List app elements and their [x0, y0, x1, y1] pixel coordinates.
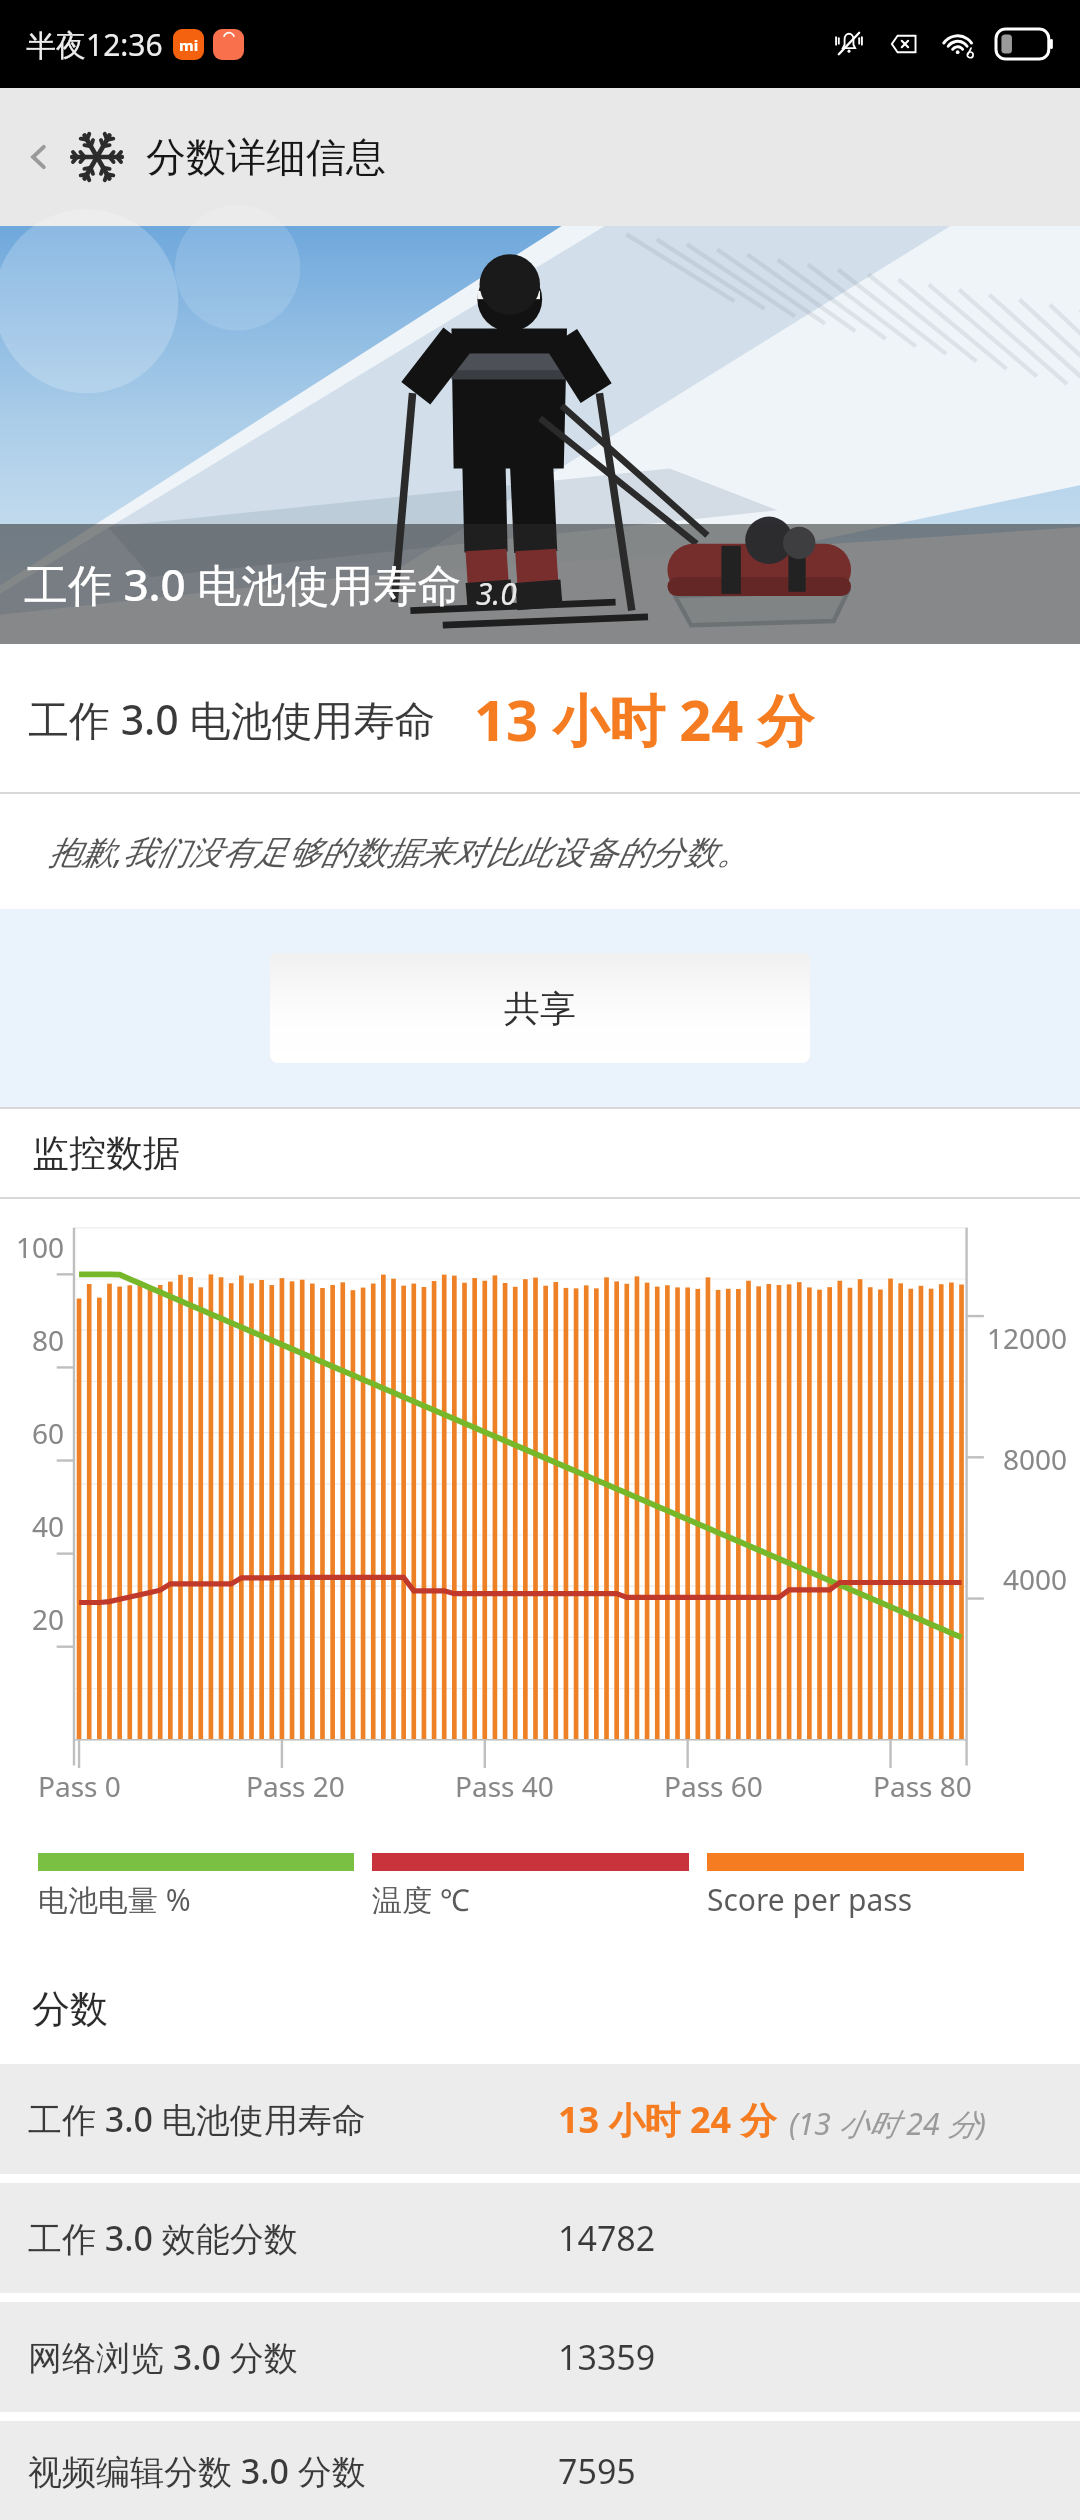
staticText: 20	[8, 1600, 64, 1638]
staticText: 工作 3.0 电池使用寿命	[28, 2096, 366, 2142]
staticText: 3.0	[476, 573, 517, 614]
button[interactable]: Back	[8, 126, 70, 188]
staticText: Score per pass	[707, 1879, 913, 1920]
staticText: mi	[179, 35, 199, 55]
staticText: 4000	[1003, 1560, 1068, 1598]
staticText: Pass 80	[873, 1767, 972, 1805]
staticText: 分数详细信息	[146, 132, 386, 182]
staticText: 7595	[558, 2448, 636, 2494]
button[interactable]: 共享	[270, 953, 810, 1063]
staticText: Pass 0	[38, 1767, 121, 1805]
staticText: 13 小时 24 分	[474, 681, 814, 757]
staticText: 60	[8, 1414, 64, 1452]
staticText: 网络浏览 3.0 分数	[28, 2334, 298, 2380]
staticText: 温度 ℃	[372, 1879, 470, 1920]
staticText: 工作 3.0 效能分数	[28, 2215, 298, 2261]
staticText: 工作 3.0 电池使用寿命	[24, 554, 462, 614]
staticText: 40	[8, 1507, 64, 1545]
staticText: 13 小时 24 分	[558, 2095, 777, 2144]
staticText: 8000	[1003, 1440, 1068, 1478]
staticText: Pass 60	[664, 1767, 763, 1805]
staticText: 监控数据	[32, 1130, 180, 1177]
staticText: Pass 40	[455, 1767, 554, 1805]
staticText: 12000	[987, 1319, 1068, 1357]
staticText: Pass 20	[246, 1767, 345, 1805]
button[interactable]: 工作 3.0 效能分数	[0, 2183, 1080, 2293]
staticText: (13 小时 24 分)	[789, 2103, 986, 2144]
staticText: 80	[8, 1321, 64, 1359]
button[interactable]: 网络浏览 3.0 分数	[0, 2302, 1080, 2412]
button[interactable]: 工作 3.0 电池使用寿命	[0, 2064, 1080, 2174]
staticText: 工作 3.0 电池使用寿命	[28, 691, 436, 747]
staticText: 共享	[504, 986, 576, 1031]
staticText: 13359	[558, 2334, 656, 2380]
staticText: 14782	[558, 2215, 656, 2261]
staticText: 100	[8, 1228, 64, 1266]
staticText: 抱歉,我们没有足够的数据来对比此设备的分数。	[48, 829, 750, 874]
staticText: 电池电量 %	[38, 1879, 191, 1920]
staticText: 视频编辑分数 3.0 分数	[28, 2448, 366, 2494]
button[interactable]: 视频编辑分数 3.0 分数	[0, 2421, 1080, 2520]
staticText: 半夜12:36	[26, 24, 163, 65]
staticText: 分数	[32, 1985, 108, 2033]
